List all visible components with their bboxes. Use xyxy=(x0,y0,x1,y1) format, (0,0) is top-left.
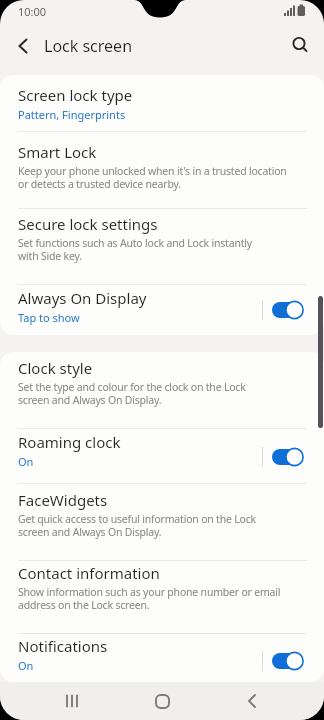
staticText: Get quick access to useful information o… xyxy=(18,512,256,539)
button[interactable] xyxy=(42,682,102,720)
button[interactable]: FaceWidgets xyxy=(0,484,324,561)
button[interactable]: Roaming clock xyxy=(0,429,324,484)
button[interactable]: Clock style xyxy=(0,352,324,429)
staticText: On xyxy=(18,658,34,673)
staticText: Contact information xyxy=(18,563,160,583)
staticText: 10:00 xyxy=(18,4,47,19)
staticText: Lock screen xyxy=(44,35,133,57)
staticText: Pattern, Fingerprints xyxy=(18,107,126,122)
staticText: Clock style xyxy=(18,358,93,378)
staticText: FaceWidgets xyxy=(18,490,108,510)
staticText: Secure lock settings xyxy=(18,214,158,234)
button[interactable] xyxy=(272,300,305,320)
staticText: Show information such as your phone numb… xyxy=(18,585,281,612)
button[interactable]: Secure lock settings xyxy=(0,209,324,285)
staticText: Always On Display xyxy=(18,288,147,308)
staticText: Smart Lock xyxy=(18,142,97,162)
button[interactable] xyxy=(272,651,305,671)
staticText: Set functions such as Auto lock and Lock… xyxy=(18,236,252,263)
button[interactable] xyxy=(132,682,192,720)
button[interactable] xyxy=(278,20,324,71)
button[interactable]: Contact information xyxy=(0,561,324,634)
button[interactable]: Smart Lock xyxy=(0,132,324,209)
button[interactable] xyxy=(222,682,282,720)
staticText: Notifications xyxy=(18,636,108,656)
button[interactable] xyxy=(0,20,44,71)
staticText: Roaming clock xyxy=(18,432,121,452)
staticText: Set the type and colour for the clock on… xyxy=(18,380,246,407)
button[interactable]: Notifications xyxy=(0,634,324,682)
staticText: Tap to show xyxy=(18,310,80,325)
button[interactable]: Screen lock type xyxy=(0,75,324,132)
staticText: On xyxy=(18,454,34,469)
staticText: Screen lock type xyxy=(18,85,133,105)
button[interactable]: Always On Display xyxy=(0,285,324,335)
button[interactable] xyxy=(272,447,305,467)
staticText: Keep your phone unlocked when it's in a … xyxy=(18,164,287,191)
